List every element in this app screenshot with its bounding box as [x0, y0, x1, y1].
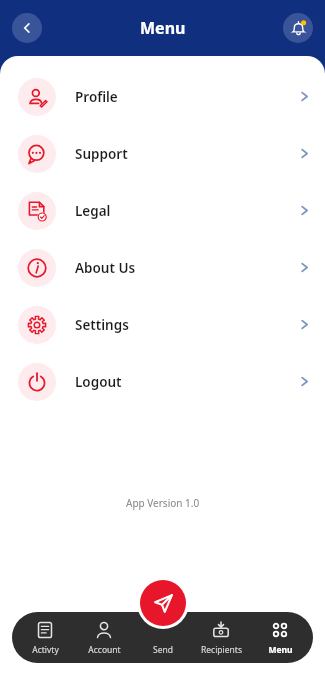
staticText: Profile [75, 88, 118, 106]
staticText: Support [75, 145, 128, 163]
button[interactable]: Send [134, 617, 192, 658]
button[interactable]: Profile [0, 68, 325, 125]
button[interactable]: About Us [0, 239, 325, 296]
staticText: Send [153, 644, 173, 656]
button[interactable]: Menu [251, 617, 309, 658]
button[interactable]: Recipients [192, 617, 250, 658]
staticText: Menu [140, 17, 186, 39]
staticText: Logout [75, 373, 122, 391]
staticText: Legal [75, 202, 111, 220]
button[interactable]: Support [0, 125, 325, 182]
staticText: App Version 1.0 [126, 496, 200, 510]
button[interactable]: Logout [0, 353, 325, 410]
button[interactable]: Account [75, 617, 133, 658]
button[interactable]: Send [140, 580, 186, 626]
staticText: Settings [75, 316, 129, 334]
button[interactable]: Settings [0, 296, 325, 353]
button[interactable]: Activty [16, 617, 74, 658]
button[interactable]: Notifications [283, 13, 313, 43]
staticText: Account [88, 644, 121, 656]
button[interactable]: Legal [0, 182, 325, 239]
staticText: Recipients [201, 644, 242, 656]
staticText: Menu [268, 644, 293, 656]
button[interactable]: Back [12, 13, 42, 43]
staticText: Activty [32, 644, 59, 656]
staticText: About Us [75, 259, 136, 277]
